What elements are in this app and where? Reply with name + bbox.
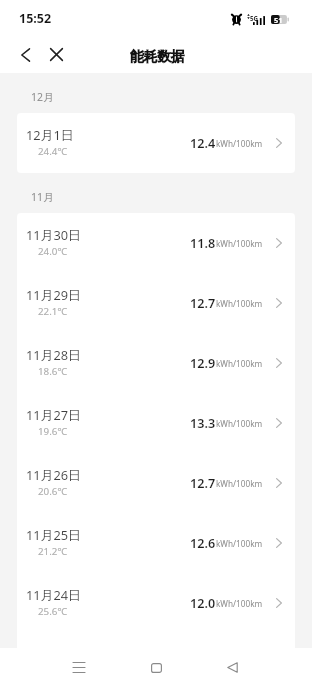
button[interactable]: Recents <box>56 648 102 687</box>
staticText: 25.6℃ <box>38 605 68 618</box>
staticText: 11月30日 <box>26 226 81 243</box>
staticText: 11月24日 <box>26 586 81 603</box>
staticText: 22.1℃ <box>38 305 68 318</box>
staticText: kWh/100km <box>216 418 263 429</box>
button[interactable]: 11月27日 <box>17 393 295 453</box>
staticText: 12.7 <box>190 295 216 312</box>
button[interactable]: 11月26日 <box>17 453 295 513</box>
button[interactable]: 11月25日 <box>17 513 295 573</box>
staticText: kWh/100km <box>216 478 263 489</box>
staticText: 13.3 <box>190 415 216 432</box>
staticText: 11月27日 <box>26 406 81 423</box>
staticText: 11月26日 <box>26 466 81 483</box>
staticText: 24.0℃ <box>38 245 68 258</box>
staticText: 15:52 <box>19 10 52 27</box>
staticText: kWh/100km <box>216 298 263 309</box>
staticText: 12月1日 <box>26 126 74 143</box>
staticText: 21.2℃ <box>38 545 68 558</box>
button[interactable]: 11月28日 <box>17 333 295 393</box>
staticText: kWh/100km <box>216 238 263 249</box>
staticText: 18.6℃ <box>38 365 68 378</box>
staticText: 20.6℃ <box>38 485 68 498</box>
button[interactable]: Home <box>133 648 179 687</box>
staticText: 51 <box>274 15 283 24</box>
staticText: kWh/100km <box>216 598 263 609</box>
staticText: 12.7 <box>190 475 216 492</box>
button[interactable]: 12月1日 <box>17 113 295 173</box>
staticText: 12.4 <box>190 135 216 152</box>
staticText: kWh/100km <box>216 538 263 549</box>
button[interactable]: Back <box>10 39 41 70</box>
button[interactable]: Back <box>209 648 255 687</box>
staticText: 5G <box>250 14 259 22</box>
button[interactable]: 11月30日 <box>17 213 295 273</box>
staticText: 11月 <box>31 190 54 204</box>
staticText: 24.4℃ <box>38 145 68 158</box>
staticText: 12.9 <box>190 355 216 372</box>
button[interactable]: 11月24日 <box>17 573 295 633</box>
button[interactable]: Close <box>41 39 72 70</box>
staticText: 11月29日 <box>26 286 81 303</box>
button[interactable]: 11月29日 <box>17 273 295 333</box>
staticText: 12月 <box>31 90 54 104</box>
staticText: 12.6 <box>190 535 216 552</box>
staticText: 11.8 <box>190 235 216 252</box>
staticText: 11月28日 <box>26 346 81 363</box>
staticText: 能耗数据 <box>130 48 185 65</box>
staticText: kWh/100km <box>216 358 263 369</box>
staticText: kWh/100km <box>216 138 263 149</box>
staticText: 19.6℃ <box>38 425 68 438</box>
staticText: 12.0 <box>190 595 216 612</box>
staticText: 11月25日 <box>26 526 81 543</box>
